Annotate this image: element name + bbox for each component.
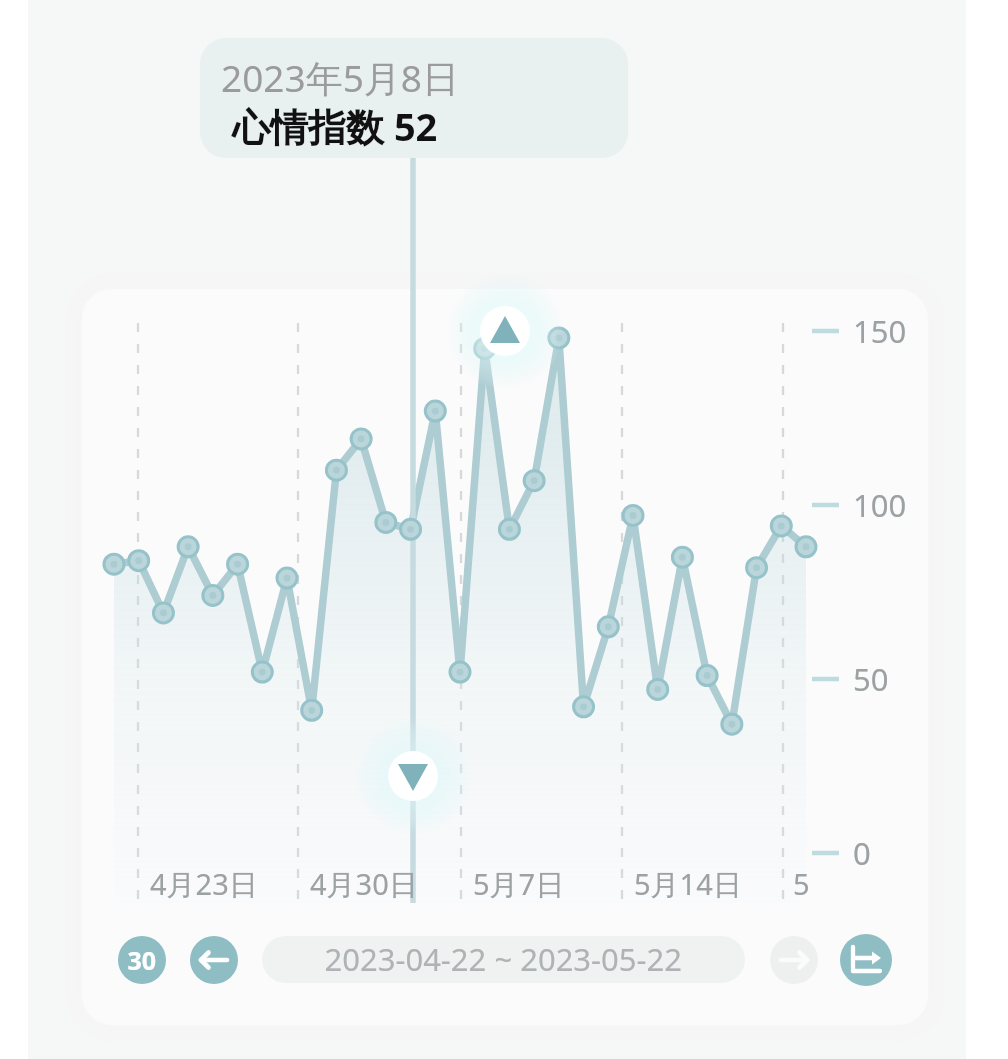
button[interactable]: Date range 2023-04-22 to 2023-05-22 [262,936,745,983]
button[interactable]: Next period [770,936,818,984]
button[interactable]: Export chart [840,934,892,986]
button[interactable]: Previous period [190,936,238,984]
button[interactable]: 30 day range [118,936,166,984]
